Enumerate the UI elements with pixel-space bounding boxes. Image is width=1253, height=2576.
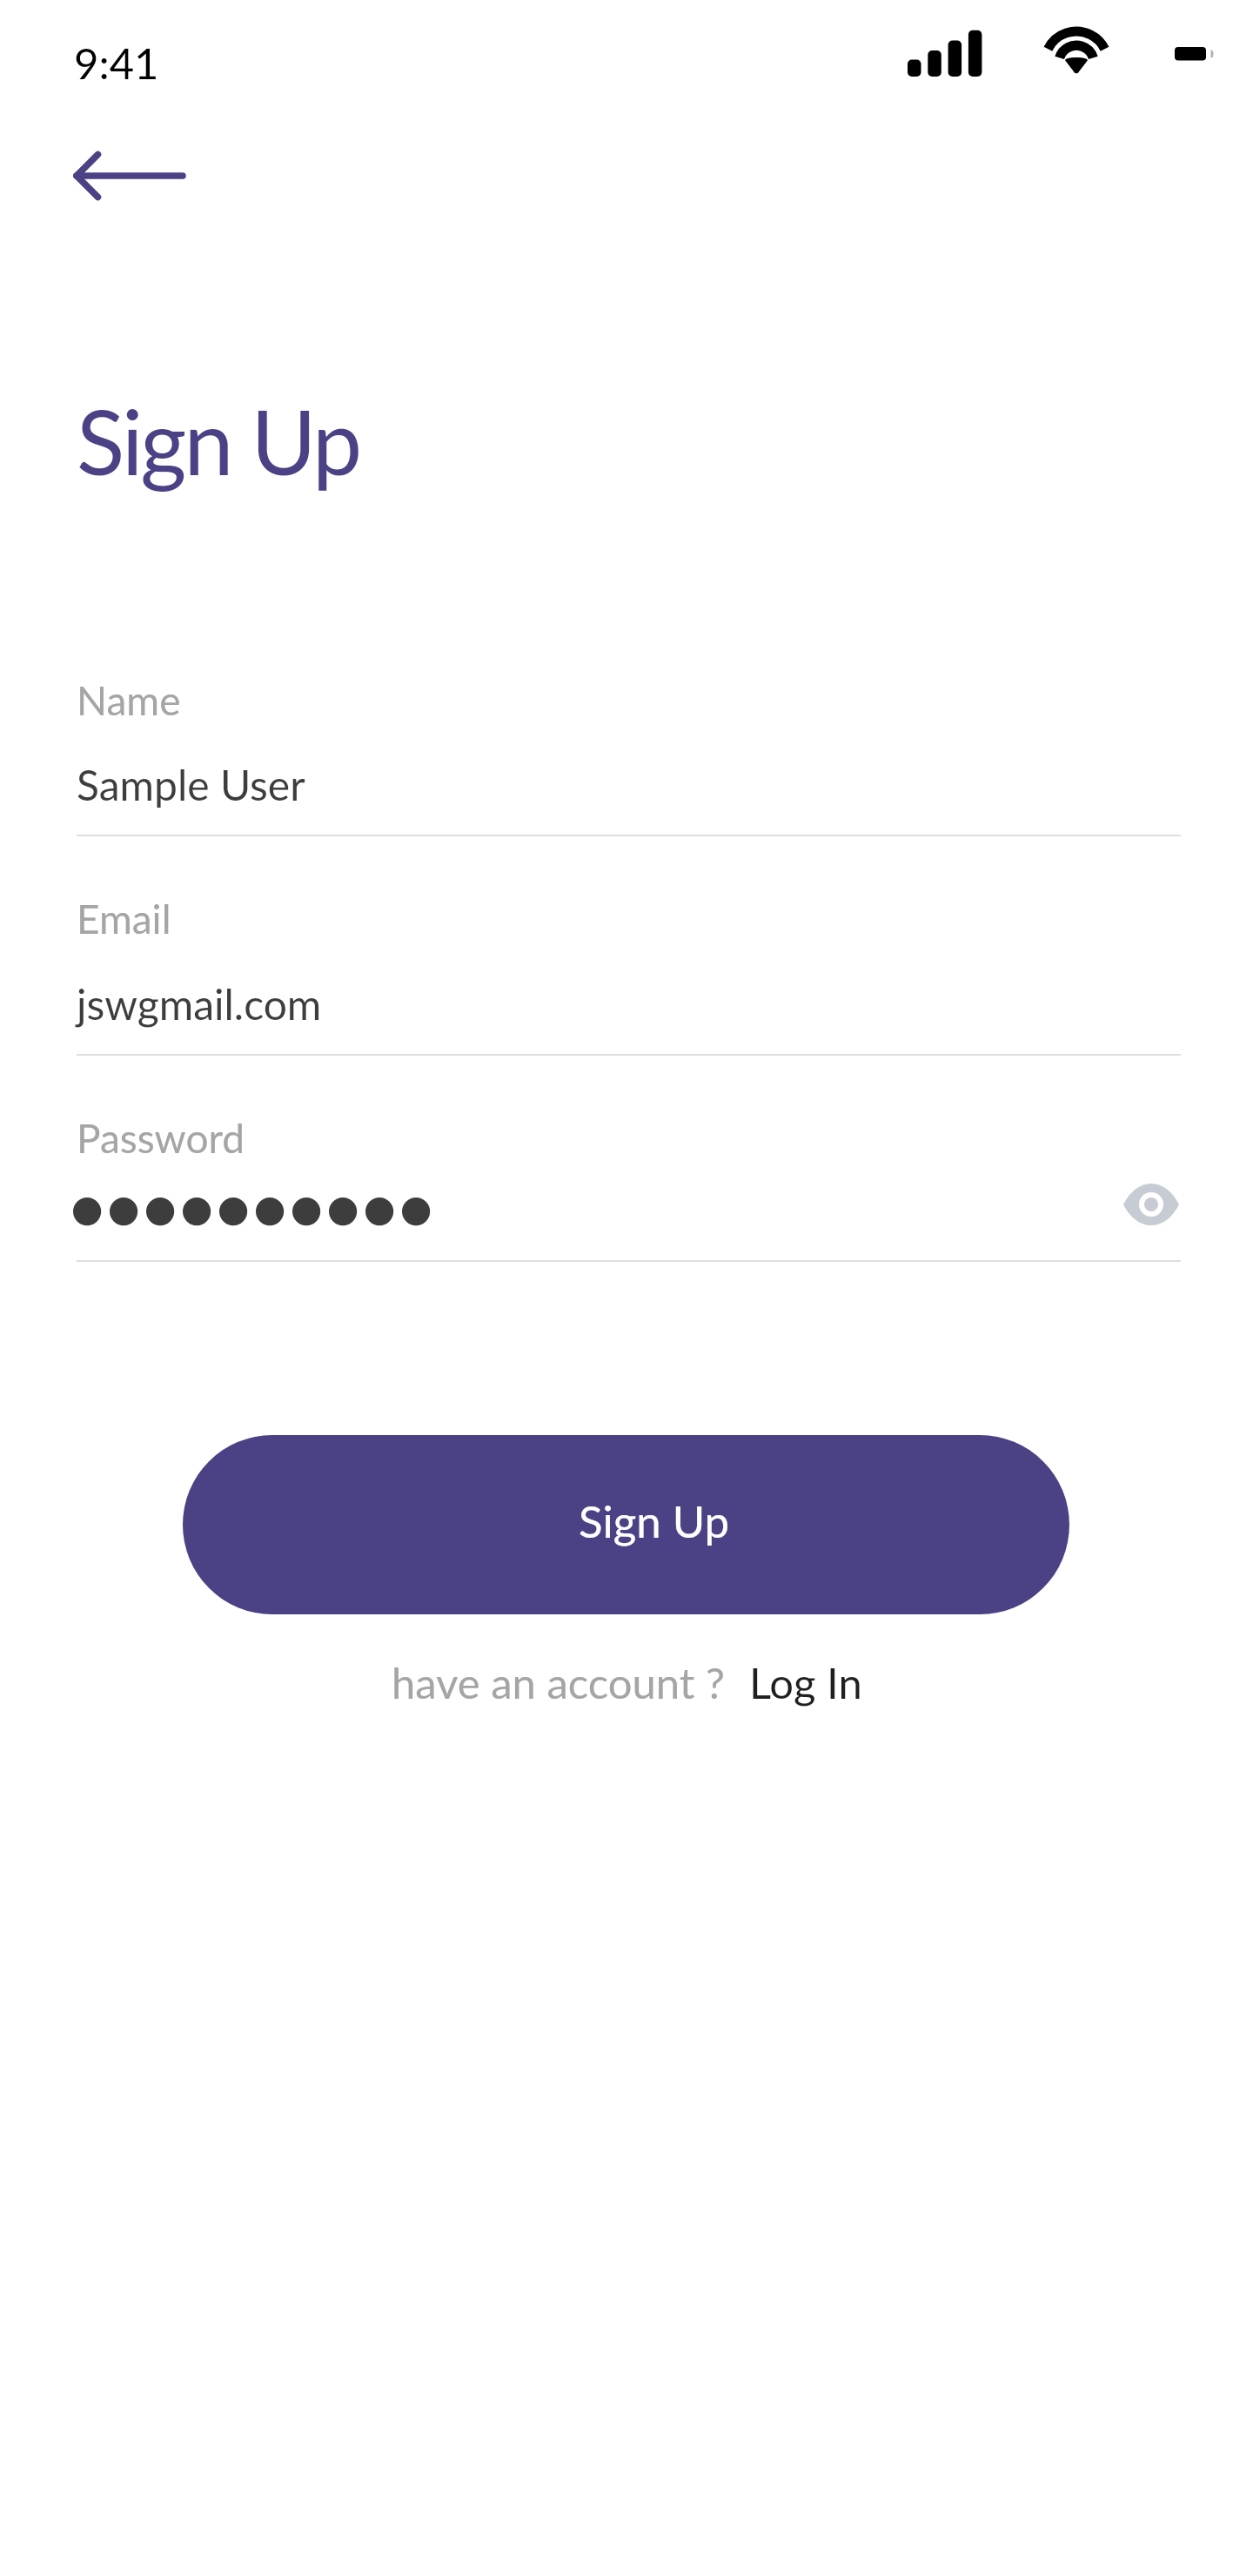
staticText: Sign Up — [579, 1494, 730, 1547]
button[interactable]: Sign Up — [183, 1435, 1069, 1614]
staticText: have an account ? — [392, 1657, 725, 1708]
staticText: Sign Up — [77, 387, 360, 493]
button[interactable]: Show password — [1099, 1152, 1203, 1257]
button[interactable]: Log In — [749, 1646, 862, 1719]
staticText: Password — [77, 1114, 245, 1162]
staticText: jswgmail.com — [77, 979, 322, 1030]
staticText: Name — [77, 676, 181, 724]
staticText: Sample User — [77, 760, 305, 810]
button[interactable]: Back — [49, 129, 205, 223]
staticText: Log In — [749, 1657, 862, 1708]
staticText: 9:41 — [74, 37, 159, 89]
staticText: Email — [77, 895, 171, 943]
